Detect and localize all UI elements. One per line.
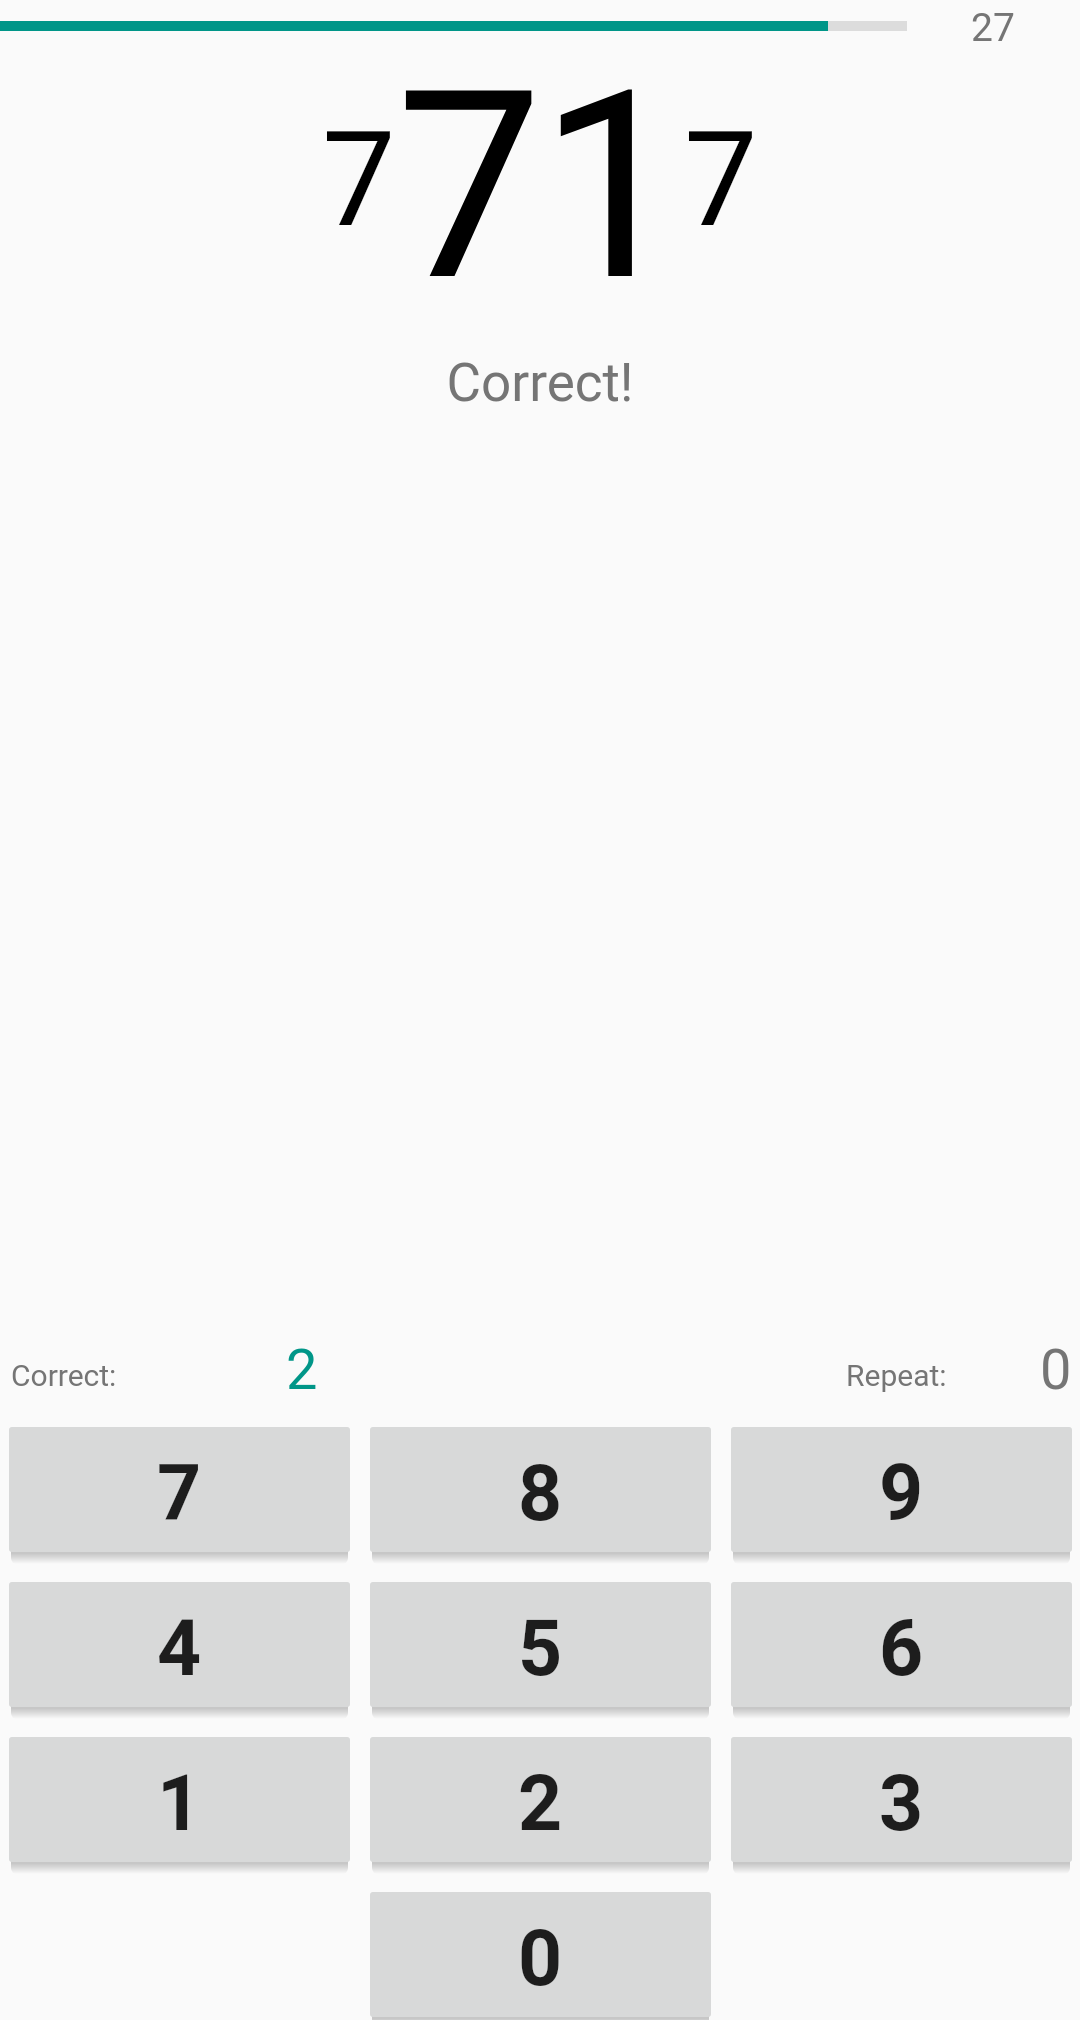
staticText: 5 xyxy=(518,1604,563,1694)
button[interactable]: 5 xyxy=(370,1582,711,1707)
staticText: 2 xyxy=(286,1337,318,1403)
staticText: 7 xyxy=(684,103,758,257)
staticText: 7 xyxy=(322,103,396,257)
staticText: 2 xyxy=(518,1759,563,1849)
staticText: 27 xyxy=(971,5,1015,51)
staticText: 3 xyxy=(879,1759,924,1849)
staticText: Correct! xyxy=(0,352,1080,414)
staticText: 7 xyxy=(396,34,543,340)
staticText: 6 xyxy=(879,1604,924,1694)
button[interactable]: 6 xyxy=(731,1582,1072,1707)
button[interactable]: 3 xyxy=(731,1737,1072,1862)
button[interactable]: 0 xyxy=(370,1892,711,2017)
button[interactable]: 8 xyxy=(370,1427,711,1552)
staticText: 7 xyxy=(157,1449,202,1539)
staticText: 8 xyxy=(518,1449,563,1539)
button[interactable]: 1 xyxy=(9,1737,350,1862)
button[interactable]: 4 xyxy=(9,1582,350,1707)
button[interactable]: 7 xyxy=(9,1427,350,1552)
button[interactable]: 2 xyxy=(370,1737,711,1862)
staticText: 1 xyxy=(539,34,686,340)
staticText: 1 xyxy=(157,1759,202,1849)
staticText: 9 xyxy=(879,1449,924,1539)
staticText: 0 xyxy=(1040,1337,1072,1403)
staticText: Correct: xyxy=(11,1358,117,1393)
staticText: Repeat: xyxy=(846,1358,947,1393)
staticText: 0 xyxy=(518,1914,563,2004)
staticText: 4 xyxy=(157,1604,202,1694)
button[interactable]: 9 xyxy=(731,1427,1072,1552)
